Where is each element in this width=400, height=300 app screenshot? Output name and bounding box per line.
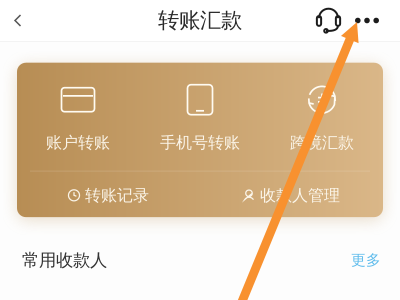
button[interactable]: 收款人管理 — [200, 185, 383, 205]
staticText: 更多 — [351, 251, 381, 269]
staticText: 转账记录 — [85, 185, 149, 205]
staticText: 收款人管理 — [260, 185, 340, 205]
staticText: 跨境汇款 — [290, 133, 354, 153]
staticText: 常用收款人 — [22, 249, 107, 271]
button[interactable]: 手机号转账 — [139, 83, 261, 151]
staticText: 手机号转账 — [160, 133, 240, 153]
button[interactable]: 常用收款人 — [0, 238, 400, 282]
button[interactable]: More options — [342, 6, 400, 35]
button[interactable]: 转账记录 — [17, 185, 200, 205]
staticText: 账户转账 — [46, 133, 110, 153]
button[interactable]: 跨境汇款 — [261, 83, 383, 151]
button[interactable]: 账户转账 — [17, 83, 139, 151]
staticText: 转账汇款 — [158, 7, 242, 34]
button[interactable]: Customer service — [303, 0, 342, 41]
button[interactable]: Back — [0, 3, 34, 38]
